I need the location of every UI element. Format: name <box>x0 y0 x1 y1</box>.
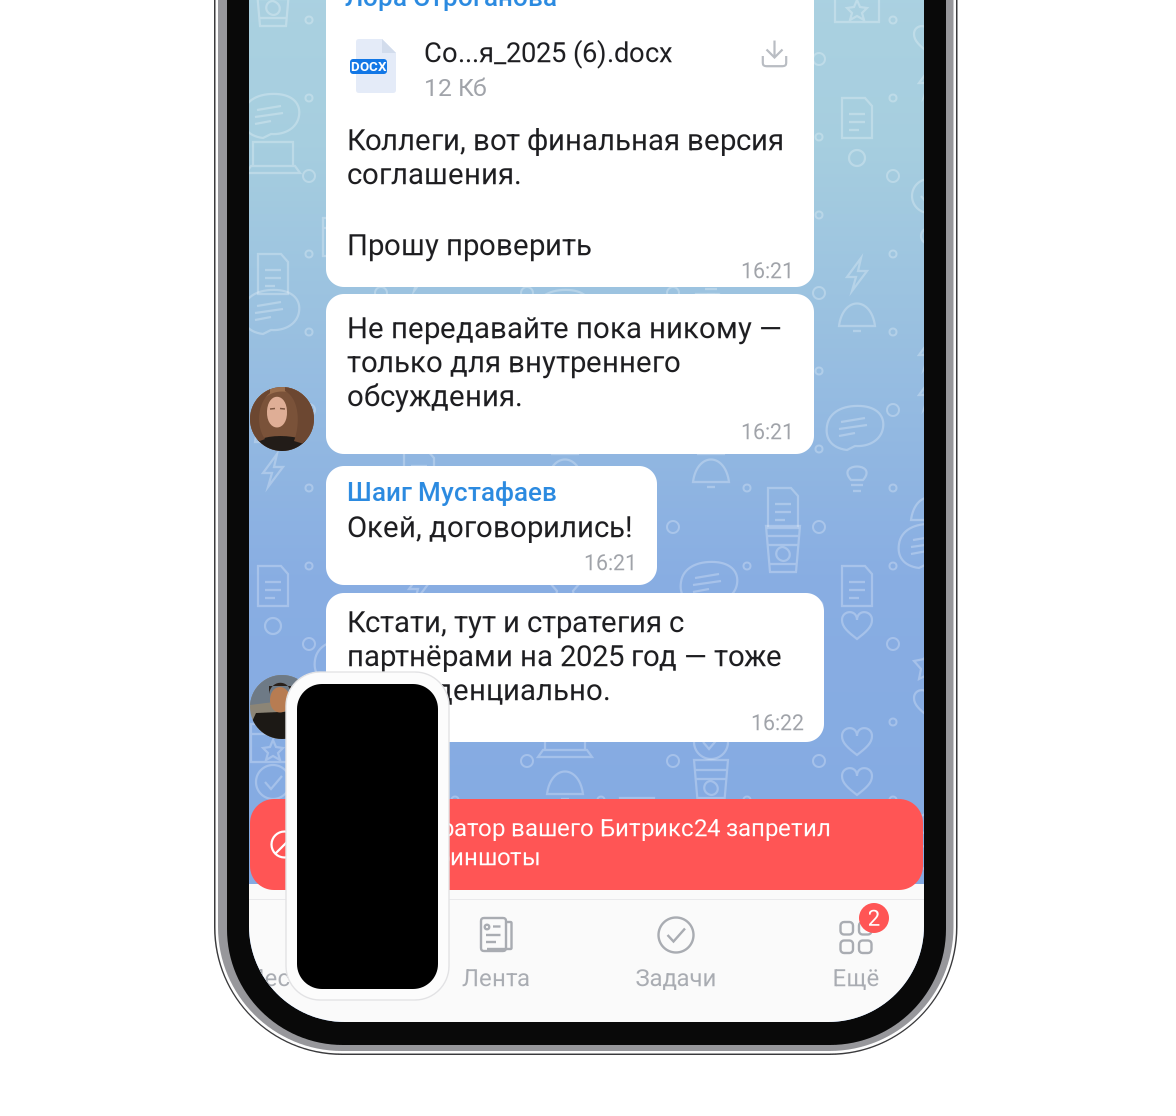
staticText: 12 Кб <box>424 73 487 102</box>
staticText: Кстати, тут и стратегия с <box>347 605 684 639</box>
staticText: 16:21 <box>741 258 794 283</box>
staticText: Не передавайте пока никому — <box>347 311 782 345</box>
staticText: партнёрами на 2025 год — тоже <box>347 639 782 673</box>
staticText: Шаиг Мустафаев <box>347 477 557 507</box>
staticText: Прошу проверить <box>347 228 592 262</box>
button[interactable]: Мессенджер <box>226 900 406 1022</box>
staticText: Co...я_2025 (6).docx <box>424 37 673 69</box>
staticText: делать скриншоты <box>326 843 541 871</box>
staticText: соглашения. <box>347 157 522 191</box>
button[interactable]: Лента <box>406 900 586 1022</box>
staticText: 16:21 <box>584 550 637 575</box>
staticText: Окей, договорились! <box>347 510 633 544</box>
staticText: конфиденциально. <box>347 673 611 707</box>
button[interactable]: 2 <box>766 900 946 1022</box>
staticText: обсуждения. <box>347 379 523 413</box>
staticText: Коллеги, вот финальная версия <box>347 123 784 157</box>
staticText: Задачи <box>635 964 716 992</box>
staticText: 16:21 <box>741 419 794 444</box>
staticText: DOCX <box>351 59 386 74</box>
staticText: Ещё <box>832 964 879 992</box>
staticText: 2 <box>867 905 880 931</box>
staticText: Лента <box>462 964 530 992</box>
staticText: Лора Строганова <box>345 0 557 12</box>
staticText: Администратор вашего Битрикс24 запретил <box>326 814 831 842</box>
staticText: Мессенджер <box>243 964 388 992</box>
staticText: только для внутреннего <box>347 345 681 379</box>
staticText: 16:22 <box>751 710 804 735</box>
button[interactable]: Задачи <box>586 900 766 1022</box>
